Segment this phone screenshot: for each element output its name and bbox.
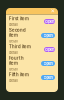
staticText: ✕	[50, 8, 54, 14]
staticText: Third item	[9, 44, 31, 49]
staticText: Second item	[9, 28, 26, 38]
staticText: detail	[9, 78, 18, 83]
button[interactable]: Open	[44, 19, 55, 24]
staticText: detail	[9, 50, 18, 55]
button[interactable]: Open	[44, 47, 55, 52]
staticText: detail	[9, 39, 18, 43]
button[interactable]: Open	[41, 33, 55, 38]
staticText: Open	[45, 47, 54, 52]
staticText: Open	[43, 61, 52, 66]
staticText: detail	[9, 67, 18, 71]
staticText: First item	[9, 16, 29, 21]
staticText: Fifth item	[9, 72, 29, 77]
staticText: detail	[9, 22, 18, 27]
button[interactable]: Open	[41, 61, 55, 66]
staticText: Open	[45, 19, 54, 24]
staticText: Open	[43, 33, 52, 38]
staticText: Open	[43, 75, 52, 80]
staticText: Fourth item	[9, 56, 24, 66]
button[interactable]: Open	[41, 75, 55, 80]
button[interactable]: Close	[49, 7, 56, 14]
